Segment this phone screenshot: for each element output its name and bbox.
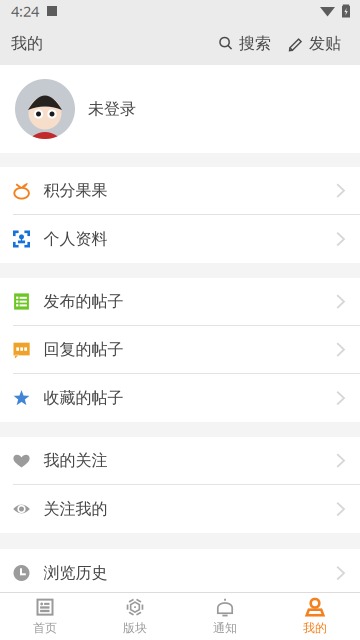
- staticText: 发贴: [309, 34, 341, 53]
- staticText: 版块: [123, 621, 147, 635]
- staticText: 通知: [213, 621, 237, 635]
- button[interactable]: 未登录: [0, 65, 360, 153]
- button[interactable]: 我的: [270, 593, 360, 640]
- button[interactable]: 发布的帖子: [0, 278, 360, 326]
- staticText: 浏览历史: [43, 563, 107, 583]
- staticText: 收藏的帖子: [43, 388, 123, 408]
- staticText: 4:24: [11, 1, 39, 21]
- button[interactable]: 通知: [180, 593, 270, 640]
- button[interactable]: 首页: [0, 593, 90, 640]
- button[interactable]: 收藏的帖子: [0, 374, 360, 422]
- button[interactable]: 浏览历史: [0, 549, 360, 592]
- button[interactable]: 个人资料: [0, 215, 360, 263]
- staticText: 我的: [303, 621, 327, 635]
- staticText: 未登录: [88, 99, 136, 119]
- staticText: 关注我的: [43, 499, 107, 519]
- staticText: 首页: [33, 621, 57, 635]
- staticText: 搜索: [239, 34, 271, 53]
- staticText: 积分果果: [43, 181, 107, 200]
- button[interactable]: 发贴: [289, 22, 341, 65]
- staticText: 我的关注: [43, 451, 107, 470]
- staticText: 个人资料: [43, 229, 107, 249]
- button[interactable]: 关注我的: [0, 485, 360, 533]
- staticText: 发布的帖子: [43, 292, 123, 311]
- button[interactable]: 我的关注: [0, 437, 360, 485]
- button[interactable]: 版块: [90, 593, 180, 640]
- button[interactable]: 回复的帖子: [0, 326, 360, 374]
- button[interactable]: 搜索: [219, 22, 271, 65]
- button[interactable]: 积分果果: [0, 167, 360, 215]
- staticText: 回复的帖子: [43, 340, 123, 359]
- staticText: 我的: [11, 34, 43, 53]
